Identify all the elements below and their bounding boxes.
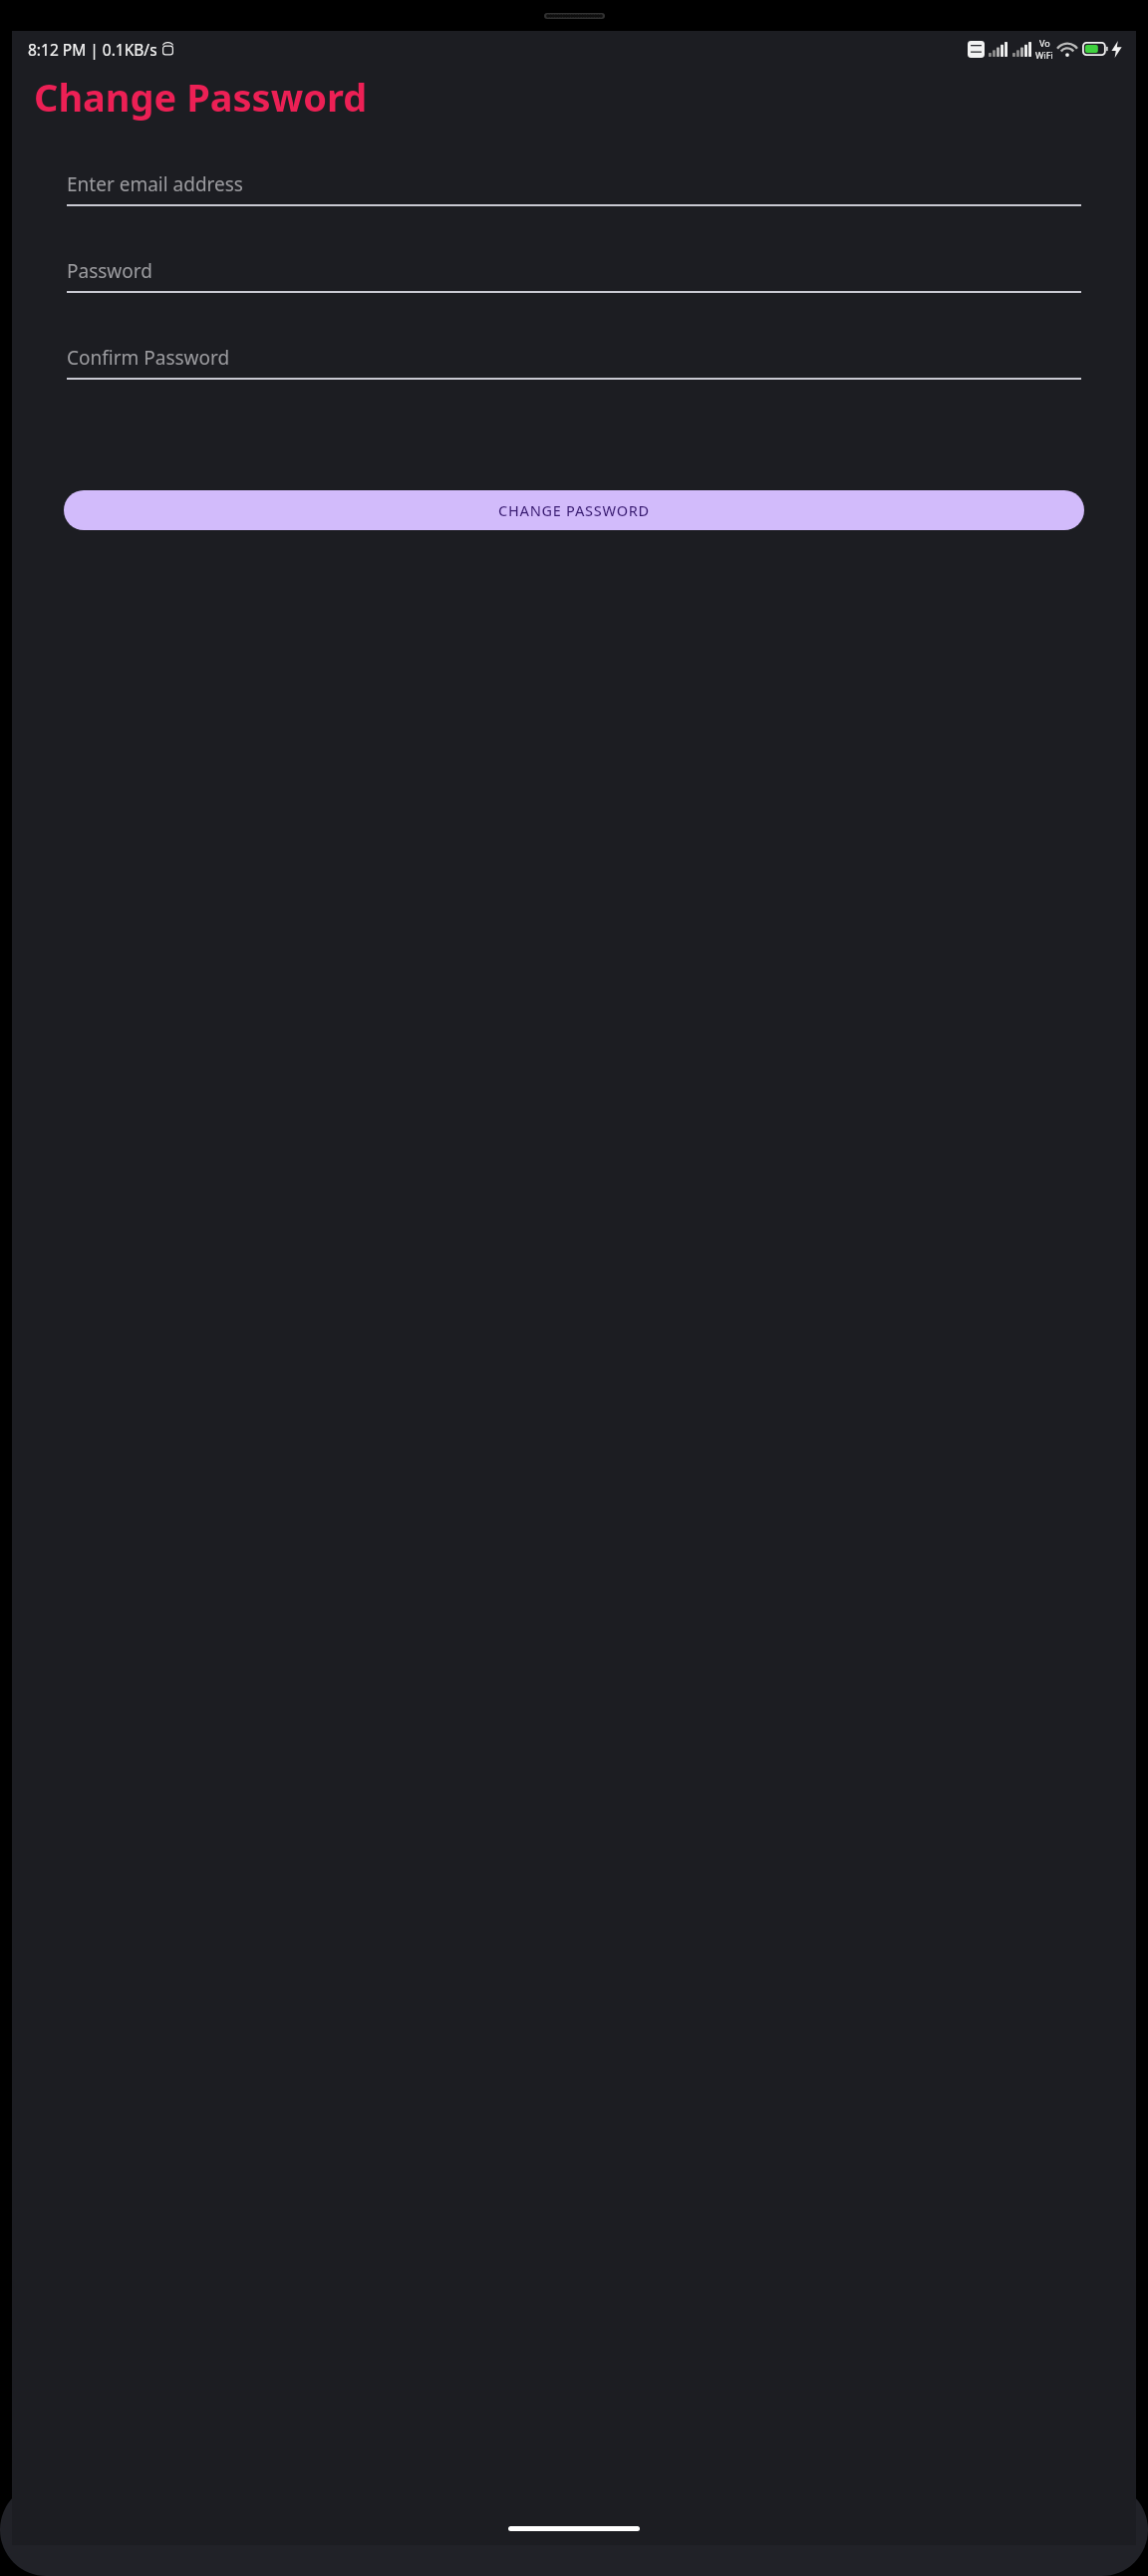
other: VoLTE [968, 41, 985, 58]
button[interactable]: Password [67, 258, 1081, 293]
other: Data saver [162, 42, 173, 56]
button[interactable]: Confirm Password [67, 345, 1081, 380]
staticText: Change Password [34, 71, 368, 123]
other: Charging [1111, 41, 1122, 58]
staticText: Vo [1039, 37, 1050, 49]
button[interactable]: Enter email address [67, 171, 1081, 206]
button[interactable]: CHANGE PASSWORD [64, 490, 1084, 530]
staticText: 8:12 PM | 0.1KB/s [28, 39, 157, 60]
staticText: Confirm Password [67, 345, 230, 371]
staticText: Enter email address [67, 171, 243, 197]
other: Wi-Fi [1058, 42, 1076, 57]
other: Battery 66 percent [1082, 42, 1109, 56]
other: Signal [989, 42, 1007, 57]
other: Signal [1012, 42, 1031, 57]
staticText: Password [67, 258, 152, 284]
staticText: CHANGE PASSWORD [498, 500, 650, 520]
staticText: WiFi [1035, 49, 1053, 61]
